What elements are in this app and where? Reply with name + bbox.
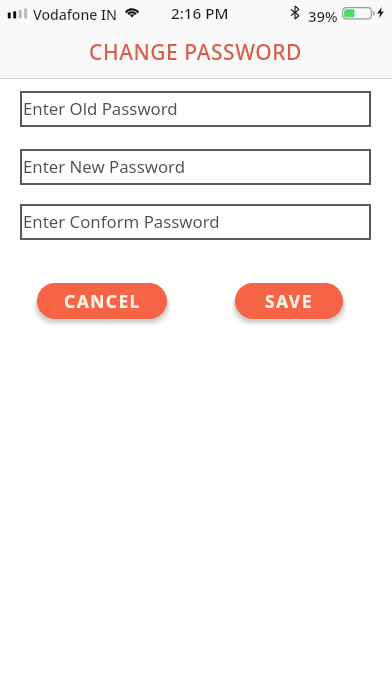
button[interactable]: SAVE [235, 283, 343, 319]
button[interactable]: CANCEL [37, 283, 167, 319]
staticText: SAVE [265, 289, 313, 313]
other: Charging [377, 7, 384, 18]
staticText: Enter New Password [23, 155, 186, 178]
staticText: Vodafone IN [33, 5, 117, 24]
button[interactable]: Enter Old Password [20, 91, 371, 127]
other: Bluetooth [291, 6, 299, 19]
staticText: Enter Old Password [23, 97, 178, 120]
button[interactable]: Enter New Password [20, 149, 371, 185]
staticText: 39% [308, 6, 338, 26]
staticText: CANCEL [64, 289, 141, 313]
other: Wi-Fi [124, 6, 141, 18]
button[interactable]: Enter Conform Password [20, 204, 371, 240]
staticText: Enter Conform Password [23, 210, 220, 233]
staticText: CHANGE PASSWORD [89, 38, 303, 67]
staticText: 2:16 PM [171, 3, 229, 24]
other: Battery 39 percent [342, 7, 376, 20]
